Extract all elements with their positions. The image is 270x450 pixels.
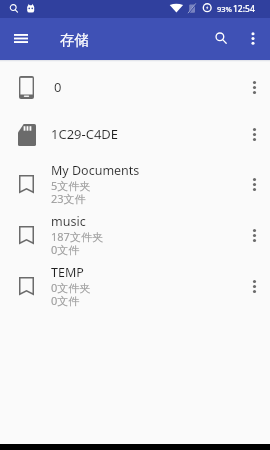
staticText: 187文件夹: [51, 229, 103, 244]
button[interactable]: Search: [208, 26, 234, 52]
staticText: 0文件: [51, 242, 80, 257]
staticText: 0文件: [51, 293, 80, 308]
staticText: music: [51, 213, 86, 230]
button[interactable]: More options: [240, 26, 266, 52]
staticText: 5文件夹: [51, 178, 91, 193]
button[interactable]: 0: [0, 64, 270, 111]
button[interactable]: More options: [238, 111, 270, 158]
button[interactable]: My Documents: [0, 158, 270, 209]
button[interactable]: More options: [238, 160, 270, 208]
button[interactable]: TEMP: [0, 260, 270, 311]
staticText: TEMP: [51, 264, 84, 281]
button[interactable]: Open navigation drawer: [8, 26, 34, 52]
button[interactable]: More options: [238, 64, 270, 111]
button[interactable]: 1C29-C4DE: [0, 111, 270, 158]
staticText: My Documents: [51, 162, 140, 179]
button[interactable]: More options: [238, 211, 270, 259]
button[interactable]: More options: [238, 262, 270, 310]
staticText: 存储: [60, 31, 89, 49]
staticText: 23文件: [51, 191, 86, 206]
staticText: 0文件夹: [51, 280, 91, 295]
staticText: 93%: [217, 4, 232, 14]
staticText: 0: [54, 78, 62, 96]
staticText: 12:54: [233, 3, 255, 15]
staticText: 1C29-C4DE: [51, 125, 119, 143]
button[interactable]: music: [0, 209, 270, 260]
